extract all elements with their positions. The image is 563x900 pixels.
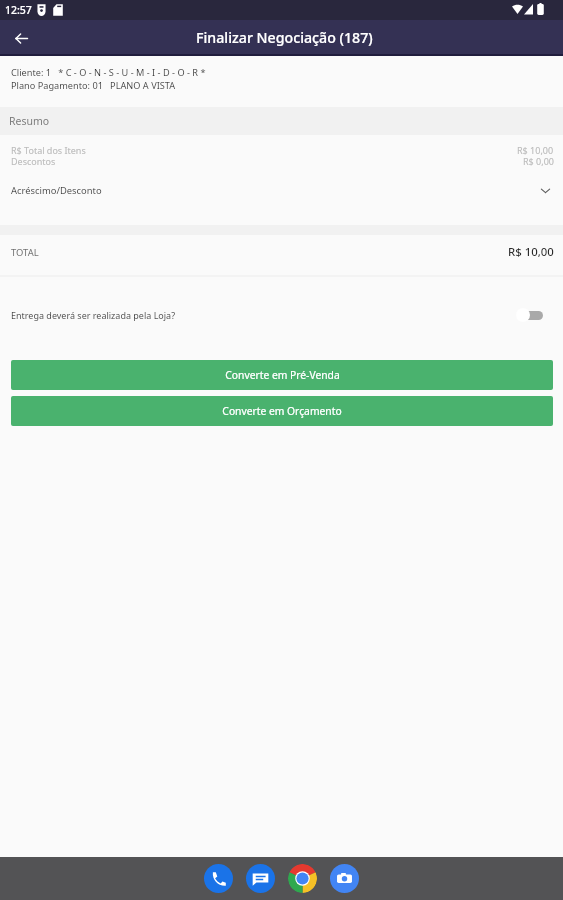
staticText: R$ Total dos Itens <box>11 144 86 156</box>
staticText: Converte em Orçamento <box>222 404 342 418</box>
button[interactable]: Converte em Orçamento <box>11 396 553 426</box>
button[interactable]: Acréscimo/Desconto <box>0 177 563 204</box>
staticText: TOTAL <box>11 246 39 259</box>
button[interactable]: Chrome <box>288 864 317 893</box>
staticText: Resumo <box>9 114 50 128</box>
staticText: R$ 0,00 <box>523 155 554 167</box>
button[interactable]: Entrega deverá ser realizada pela Loja <box>516 307 543 323</box>
staticText: R$ 10,00 <box>508 244 554 260</box>
staticText: Plano Pagamento: 01 PLANO A VISTA <box>11 79 176 92</box>
button[interactable]: Entrega deverá ser realizada pela Loja? <box>0 296 563 334</box>
staticText: Descontos <box>11 155 56 167</box>
staticText: Cliente: 1 * C - O - N - S - U - M - I -… <box>11 66 206 79</box>
staticText: R$ 10,00 <box>517 144 554 156</box>
staticText: Entrega deverá ser realizada pela Loja? <box>11 309 176 321</box>
staticText: Acréscimo/Desconto <box>11 184 102 197</box>
staticText: Converte em Pré-Venda <box>225 368 340 382</box>
button[interactable]: Phone <box>204 864 233 893</box>
button[interactable]: Back <box>7 24 35 52</box>
button[interactable]: Camera <box>330 864 359 893</box>
button[interactable]: Converte em Pré-Venda <box>11 360 553 390</box>
staticText: 12:57 <box>5 3 32 17</box>
button[interactable]: Messages <box>246 864 275 893</box>
staticText: Finalizar Negociação (187) <box>196 28 373 47</box>
